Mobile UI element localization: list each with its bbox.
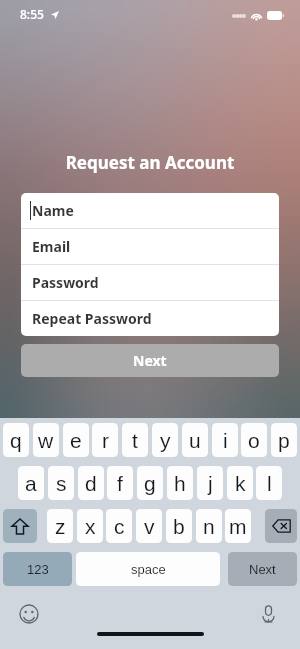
button[interactable]: u: [182, 423, 208, 457]
staticText: s: [56, 472, 67, 495]
button[interactable]: Next: [228, 552, 297, 586]
staticText: j: [208, 472, 213, 495]
button[interactable]: s: [48, 466, 74, 500]
staticText: f: [117, 472, 123, 495]
button[interactable]: b: [166, 509, 192, 543]
button[interactable]: x: [77, 509, 103, 543]
button[interactable]: q: [3, 423, 29, 457]
staticText: b: [173, 515, 185, 538]
staticText: t: [132, 429, 138, 452]
staticText: h: [174, 472, 186, 495]
staticText: Email: [32, 237, 71, 256]
button[interactable]: j: [197, 466, 223, 500]
button[interactable]: w: [33, 423, 59, 457]
staticText: space: [131, 562, 166, 577]
staticText: x: [85, 515, 96, 538]
button[interactable]: r: [92, 423, 118, 457]
staticText: Next: [249, 562, 276, 577]
staticText: l: [267, 472, 272, 495]
staticText: q: [10, 429, 22, 452]
staticText: n: [203, 515, 215, 538]
staticText: o: [248, 429, 260, 452]
staticText: u: [189, 429, 201, 452]
staticText: w: [38, 429, 54, 452]
staticText: y: [160, 429, 171, 452]
button[interactable]: Emoji: [18, 603, 40, 625]
button[interactable]: Dictation: [257, 603, 279, 625]
button[interactable]: c: [106, 509, 132, 543]
button[interactable]: 123: [3, 552, 72, 586]
button[interactable]: k: [227, 466, 253, 500]
button[interactable]: t: [122, 423, 148, 457]
staticText: Password: [32, 273, 99, 292]
staticText: i: [223, 429, 228, 452]
staticText: 8:55: [20, 6, 44, 22]
staticText: m: [229, 515, 247, 538]
button[interactable]: p: [271, 423, 297, 457]
button[interactable]: y: [152, 423, 178, 457]
button[interactable]: Password: [21, 265, 279, 300]
button[interactable]: d: [78, 466, 104, 500]
button[interactable]: Next: [21, 344, 279, 377]
button[interactable]: Shift: [3, 509, 37, 543]
staticText: z: [55, 515, 66, 538]
staticText: d: [85, 472, 97, 495]
button[interactable]: i: [212, 423, 238, 457]
staticText: p: [278, 429, 290, 452]
staticText: Repeat Password: [32, 309, 152, 328]
button[interactable]: a: [18, 466, 44, 500]
staticText: r: [102, 429, 109, 452]
staticText: Request an Account: [0, 151, 300, 174]
staticText: a: [25, 472, 37, 495]
button[interactable]: o: [241, 423, 267, 457]
button[interactable]: l: [256, 466, 282, 500]
button[interactable]: f: [107, 466, 133, 500]
staticText: e: [70, 429, 82, 452]
staticText: c: [114, 515, 125, 538]
button[interactable]: m: [225, 509, 251, 543]
button[interactable]: n: [196, 509, 222, 543]
button[interactable]: space: [76, 552, 220, 586]
button[interactable]: e: [63, 423, 89, 457]
staticText: k: [235, 472, 246, 495]
button[interactable]: v: [136, 509, 162, 543]
button[interactable]: z: [47, 509, 73, 543]
staticText: v: [144, 515, 155, 538]
staticText: Name: [32, 201, 74, 220]
button[interactable]: g: [137, 466, 163, 500]
staticText: Next: [133, 351, 167, 370]
button[interactable]: h: [167, 466, 193, 500]
button[interactable]: Email: [21, 229, 279, 264]
staticText: g: [144, 472, 156, 495]
button[interactable]: Backspace: [265, 509, 297, 543]
button[interactable]: Repeat Password: [21, 301, 279, 336]
staticText: 123: [27, 562, 49, 577]
button[interactable]: Name: [21, 193, 279, 228]
